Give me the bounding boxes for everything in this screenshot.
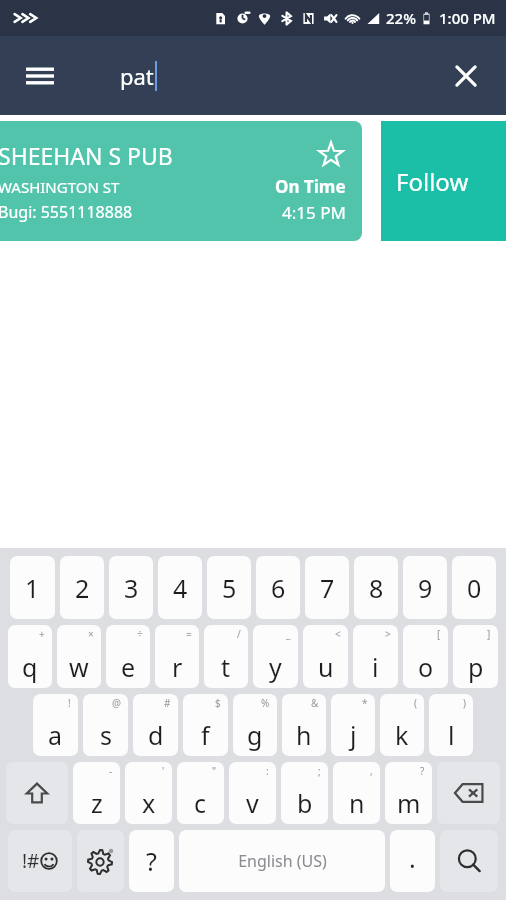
- button[interactable]: _: [253, 625, 298, 688]
- button[interactable]: -: [73, 762, 120, 824]
- button[interactable]: ?: [385, 762, 432, 824]
- button[interactable]: 1: [10, 556, 55, 619]
- button[interactable]: .: [390, 830, 435, 892]
- staticText: x: [142, 786, 156, 820]
- button[interactable]: *: [331, 694, 375, 756]
- button[interactable]: >: [353, 625, 398, 688]
- staticText: b: [297, 786, 313, 820]
- button[interactable]: :: [229, 762, 276, 824]
- button[interactable]: SHEEHAN S PUB: [0, 121, 362, 241]
- staticText: >: [385, 627, 391, 641]
- button[interactable]: +: [8, 625, 52, 688]
- staticText: <: [335, 627, 341, 641]
- staticText: +: [39, 627, 45, 641]
- button[interactable]: Search: [440, 830, 498, 892]
- button[interactable]: 8: [354, 556, 398, 619]
- staticText: :: [266, 764, 269, 778]
- button[interactable]: Menu: [14, 50, 66, 102]
- staticText: -: [109, 764, 113, 778]
- staticText: %: [261, 696, 270, 710]
- button[interactable]: ÷: [106, 625, 150, 688]
- button[interactable]: ': [125, 762, 172, 824]
- staticText: c: [194, 786, 207, 820]
- button[interactable]: 0: [452, 556, 496, 619]
- button[interactable]: 5: [207, 556, 251, 619]
- staticText: 1:00 PM: [439, 8, 496, 28]
- staticText: 3: [124, 571, 139, 605]
- staticText: p: [468, 650, 484, 684]
- button[interactable]: $: [183, 694, 228, 756]
- button[interactable]: &: [282, 694, 326, 756]
- staticText: (: [414, 696, 417, 710]
- staticText: ?: [420, 764, 425, 778]
- button[interactable]: ": [177, 762, 224, 824]
- button[interactable]: =: [155, 625, 199, 688]
- button[interactable]: [: [403, 625, 448, 688]
- button[interactable]: (: [380, 694, 424, 756]
- button[interactable]: Settings: [77, 830, 124, 892]
- staticText: ': [162, 764, 165, 778]
- button[interactable]: Favorite: [316, 139, 346, 169]
- button[interactable]: 2: [60, 556, 104, 619]
- button[interactable]: 6: [256, 556, 300, 619]
- button[interactable]: Backspace: [437, 762, 500, 824]
- staticText: 1: [25, 571, 40, 605]
- staticText: j: [350, 718, 357, 752]
- staticText: ]: [487, 627, 491, 641]
- staticText: 9: [418, 571, 433, 605]
- button[interactable]: #: [133, 694, 178, 756]
- staticText: #: [164, 696, 171, 710]
- button[interactable]: English (US): [179, 830, 385, 892]
- button[interactable]: /: [204, 625, 248, 688]
- staticText: 6: [271, 571, 286, 605]
- staticText: .: [409, 841, 416, 875]
- staticText: ÷: [137, 627, 143, 641]
- button[interactable]: Shift: [6, 762, 68, 824]
- staticText: k: [395, 718, 409, 752]
- staticText: !: [68, 696, 71, 710]
- staticText: n: [349, 786, 365, 820]
- button[interactable]: ): [429, 694, 473, 756]
- staticText: d: [148, 718, 164, 752]
- staticText: English (US): [238, 850, 327, 872]
- button[interactable]: ;: [281, 762, 328, 824]
- button[interactable]: @: [83, 694, 128, 756]
- staticText: e: [121, 650, 136, 684]
- staticText: f: [201, 718, 210, 752]
- staticText: 0: [467, 571, 482, 605]
- button[interactable]: 7: [305, 556, 349, 619]
- button[interactable]: ?: [129, 830, 174, 892]
- staticText: 8: [369, 571, 384, 605]
- staticText: 4: [173, 571, 188, 605]
- staticText: m: [397, 786, 421, 820]
- button[interactable]: Symbols and emoji: [8, 830, 72, 892]
- staticText: o: [418, 650, 434, 684]
- button[interactable]: 9: [403, 556, 447, 619]
- button[interactable]: Clear search: [440, 50, 492, 102]
- staticText: r: [172, 650, 183, 684]
- staticText: y: [269, 650, 282, 684]
- staticText: ": [212, 764, 217, 778]
- staticText: i: [372, 650, 379, 684]
- button[interactable]: ]: [453, 625, 498, 688]
- staticText: q: [22, 650, 38, 684]
- staticText: Follow: [396, 165, 469, 198]
- staticText: On Time: [275, 175, 346, 198]
- staticText: /: [237, 627, 241, 641]
- button[interactable]: 4: [158, 556, 202, 619]
- staticText: =: [186, 627, 192, 641]
- button[interactable]: ,: [333, 762, 380, 824]
- staticText: z: [91, 786, 103, 820]
- staticText: *: [362, 696, 368, 710]
- staticText: 22%: [386, 8, 416, 28]
- button[interactable]: 3: [109, 556, 153, 619]
- staticText: 4:15 PM: [282, 201, 346, 224]
- button[interactable]: Follow: [381, 121, 506, 241]
- button[interactable]: !: [33, 694, 78, 756]
- button[interactable]: %: [233, 694, 277, 756]
- button[interactable]: <: [303, 625, 348, 688]
- staticText: WASHINGTON ST: [0, 177, 120, 197]
- button[interactable]: ×: [57, 625, 101, 688]
- staticText: SHEEHAN S PUB: [0, 140, 173, 171]
- staticText: v: [246, 786, 259, 820]
